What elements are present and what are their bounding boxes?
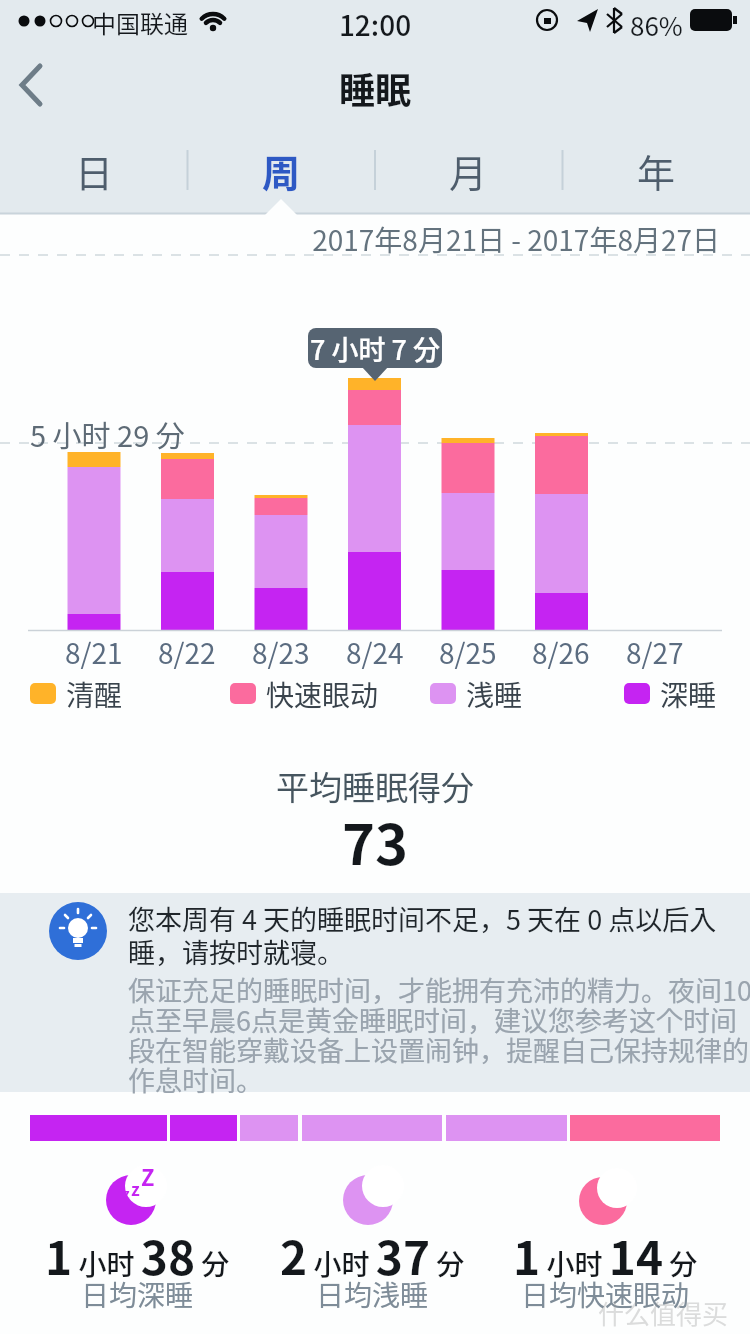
staticText: 5 小时 29 分 xyxy=(30,413,185,455)
staticText: 73 xyxy=(0,800,750,881)
button[interactable] xyxy=(6,56,66,116)
staticText: 保证充足的睡眠时间，才能拥有充沛的精力。夜间10 点至早晨6点是黄金睡眠时间，建… xyxy=(128,970,750,1099)
staticText: 1 小时 38 分 xyxy=(45,1222,230,1289)
staticText: 日均浅睡 xyxy=(316,1274,429,1315)
staticText: z xyxy=(123,1184,130,1203)
staticText: 平均睡眠得分 xyxy=(0,762,750,810)
staticText: 7 小时 7 分 xyxy=(310,329,441,368)
staticText: 日均深睡 xyxy=(81,1274,194,1315)
staticText: 中国联通 xyxy=(92,5,188,40)
staticText: 日均快速眼动 xyxy=(521,1274,690,1315)
staticText: 年 xyxy=(637,143,676,198)
button[interactable]: 月 xyxy=(388,136,548,204)
button[interactable]: 周 xyxy=(201,136,361,204)
staticText: 8/21 xyxy=(65,632,123,673)
button[interactable]: 日 xyxy=(14,136,174,204)
staticText: 月 xyxy=(449,143,488,198)
staticText: 2 小时 37 分 xyxy=(280,1222,465,1289)
staticText: 什么值得买 xyxy=(598,1294,729,1332)
staticText: 8/25 xyxy=(439,632,497,673)
staticText: 睡眠 xyxy=(0,62,750,114)
staticText: 86% xyxy=(630,6,683,44)
staticText: 8/26 xyxy=(532,632,590,673)
staticText: 深睡 xyxy=(660,674,717,715)
staticText: 2017年8月21日 - 2017年8月27日 xyxy=(0,219,720,260)
staticText: 快速眼动 xyxy=(266,674,379,715)
staticText: 浅睡 xyxy=(466,674,523,715)
staticText: 12:00 xyxy=(0,4,750,45)
staticText: 清醒 xyxy=(66,674,123,715)
staticText: 日 xyxy=(75,143,114,198)
staticText: Z xyxy=(141,1160,155,1192)
staticText: 1 小时 14 分 xyxy=(513,1222,698,1289)
button[interactable]: 年 xyxy=(576,136,736,204)
staticText: z xyxy=(131,1176,140,1201)
staticText: 您本周有 4 天的睡眠时间不足，5 天在 0 点以后入 睡，请按时就寝。 xyxy=(128,899,717,971)
button[interactable]: 您本周有 4 天的睡眠时间不足，5 天在 0 点以后入 睡，请按时就寝。 xyxy=(128,899,748,971)
staticText: 8/22 xyxy=(158,632,216,673)
staticText: 8/27 xyxy=(626,632,684,673)
staticText: 8/23 xyxy=(252,632,310,673)
staticText: 周 xyxy=(262,143,301,198)
staticText: 8/24 xyxy=(346,632,404,673)
